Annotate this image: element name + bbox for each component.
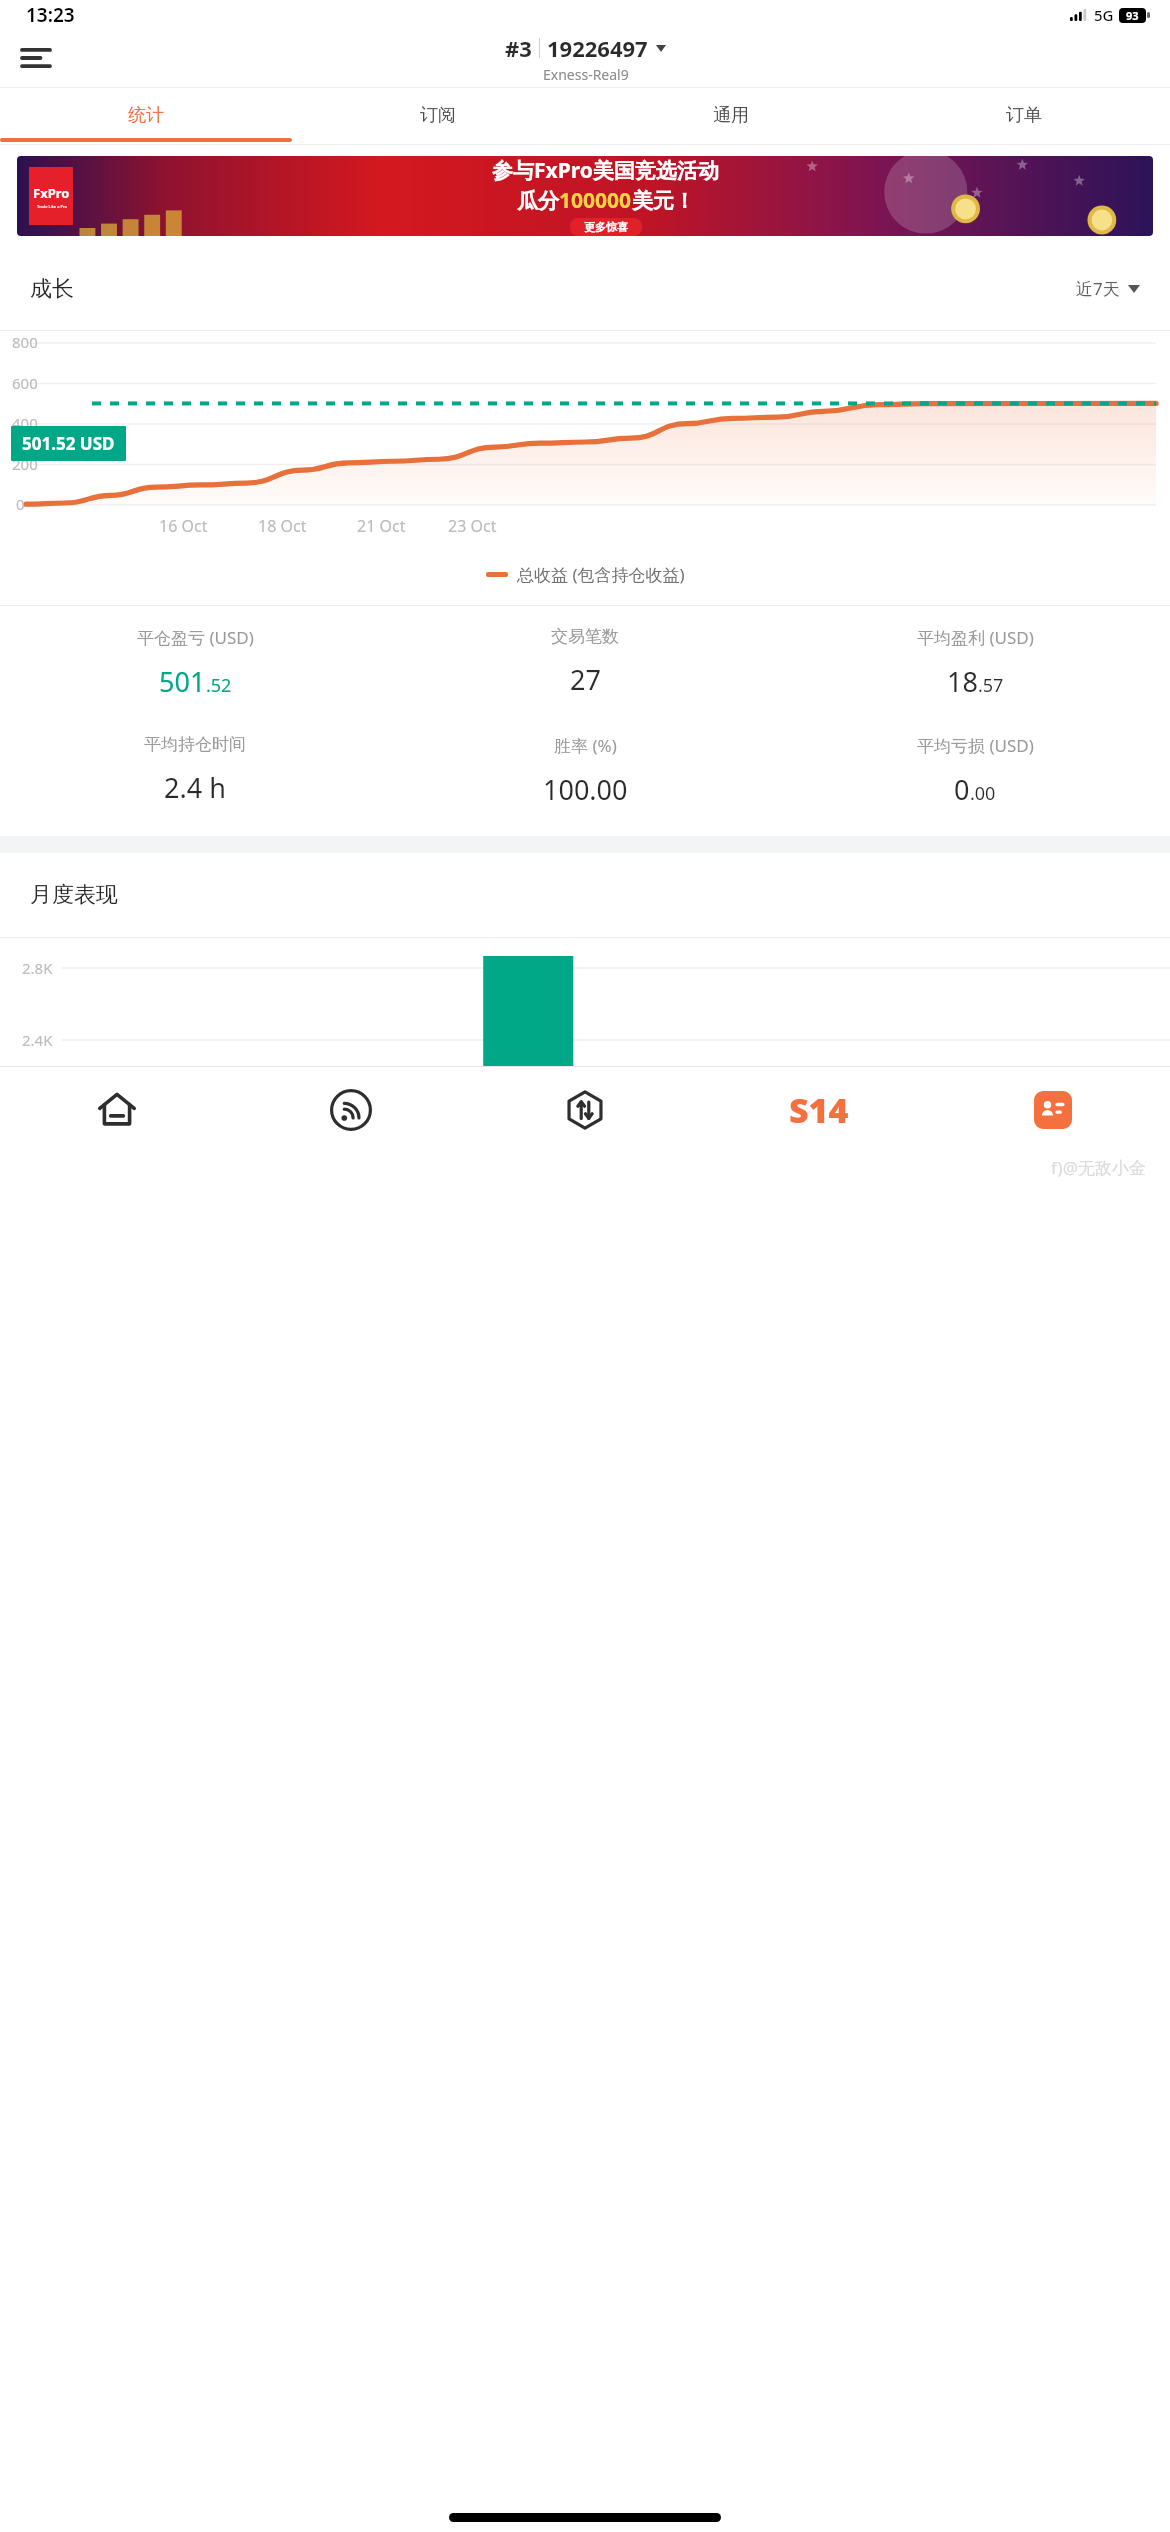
button[interactable]: 统计 xyxy=(0,87,292,144)
staticText: 平仓盈亏 (USD) xyxy=(137,626,254,649)
button[interactable]: Menu xyxy=(8,30,64,86)
staticText: 100.00 xyxy=(543,771,628,808)
button[interactable]: 订单 xyxy=(877,87,1170,144)
staticText: 501.52 USD xyxy=(22,432,115,455)
button[interactable]: Profile xyxy=(936,1066,1170,1154)
staticText: 18 Oct xyxy=(258,515,307,537)
staticText: FxPro xyxy=(33,184,70,202)
staticText: 参与FxPro美国竞选活动 xyxy=(492,156,719,185)
staticText: 成长 xyxy=(30,275,74,303)
button[interactable]: 交易笔数 xyxy=(390,626,780,698)
staticText: .00 xyxy=(970,781,996,806)
button[interactable]: 平仓盈亏 (USD) xyxy=(0,626,390,700)
staticText: Exness-Real9 xyxy=(543,65,629,84)
staticText: 800 xyxy=(12,332,38,352)
staticText: 瓜分 xyxy=(517,188,559,214)
button[interactable]: 胜率 (%) xyxy=(390,734,780,808)
staticText: 交易笔数 xyxy=(551,626,619,647)
staticText: 0 xyxy=(954,771,970,808)
staticText: 2.4K xyxy=(22,1030,53,1050)
staticText: 0 xyxy=(16,494,25,514)
staticText: 200 xyxy=(12,454,38,474)
staticText: 400 xyxy=(12,413,38,433)
button[interactable]: 平均亏损 (USD) xyxy=(780,734,1170,808)
staticText: 21 Oct xyxy=(357,515,406,537)
staticText: f)@无敌小金 xyxy=(1051,1156,1146,1179)
staticText: 订阅 xyxy=(420,104,456,127)
button[interactable]: S14 xyxy=(702,1066,936,1154)
button[interactable]: 平均盈利 (USD) xyxy=(780,626,1170,700)
button[interactable]: 平均持仓时间 xyxy=(0,734,390,806)
staticText: 600 xyxy=(12,373,38,393)
staticText: 美元！ xyxy=(632,188,695,214)
staticText: 平均持仓时间 xyxy=(144,734,246,755)
staticText: 93 xyxy=(1126,8,1139,23)
button[interactable]: Signals xyxy=(234,1066,468,1154)
staticText: #3 xyxy=(505,33,532,63)
staticText: 27 xyxy=(570,661,601,698)
staticText: Trade Like a Pro xyxy=(37,204,67,209)
button[interactable]: FxPro xyxy=(17,156,1153,236)
staticText: 19226497 xyxy=(547,33,648,63)
button[interactable]: Home xyxy=(0,1066,234,1154)
staticText: .52 xyxy=(206,673,232,698)
staticText: 100000 xyxy=(559,186,632,215)
staticText: 近7天 xyxy=(1076,277,1120,300)
staticText: 501 xyxy=(159,663,206,700)
staticText: 月度表现 xyxy=(30,881,118,909)
staticText: 13:23 xyxy=(26,2,75,28)
button[interactable]: #3 xyxy=(505,33,666,84)
staticText: 胜率 (%) xyxy=(554,734,617,757)
button[interactable]: 通用 xyxy=(584,87,877,144)
staticText: 16 Oct xyxy=(159,515,208,537)
staticText: 5G xyxy=(1094,5,1114,25)
staticText: 平均亏损 (USD) xyxy=(917,734,1034,757)
staticText: .57 xyxy=(978,673,1004,698)
staticText: 统计 xyxy=(128,104,164,127)
button[interactable]: Trade xyxy=(468,1066,702,1154)
staticText: 2.8K xyxy=(22,958,53,978)
staticText: 平均盈利 (USD) xyxy=(917,626,1034,649)
staticText: 总收益 (包含持仓收益) xyxy=(517,563,685,586)
staticText: 18 xyxy=(947,663,978,700)
button[interactable]: 近7天 xyxy=(1076,277,1140,300)
staticText: 订单 xyxy=(1006,104,1042,127)
button[interactable]: 订阅 xyxy=(292,87,584,144)
staticText: 23 Oct xyxy=(448,515,497,537)
staticText: 2.4 h xyxy=(164,769,226,806)
staticText: S14 xyxy=(789,1087,849,1133)
staticText: 通用 xyxy=(713,104,749,127)
staticText: 更多惊喜 xyxy=(584,220,628,234)
